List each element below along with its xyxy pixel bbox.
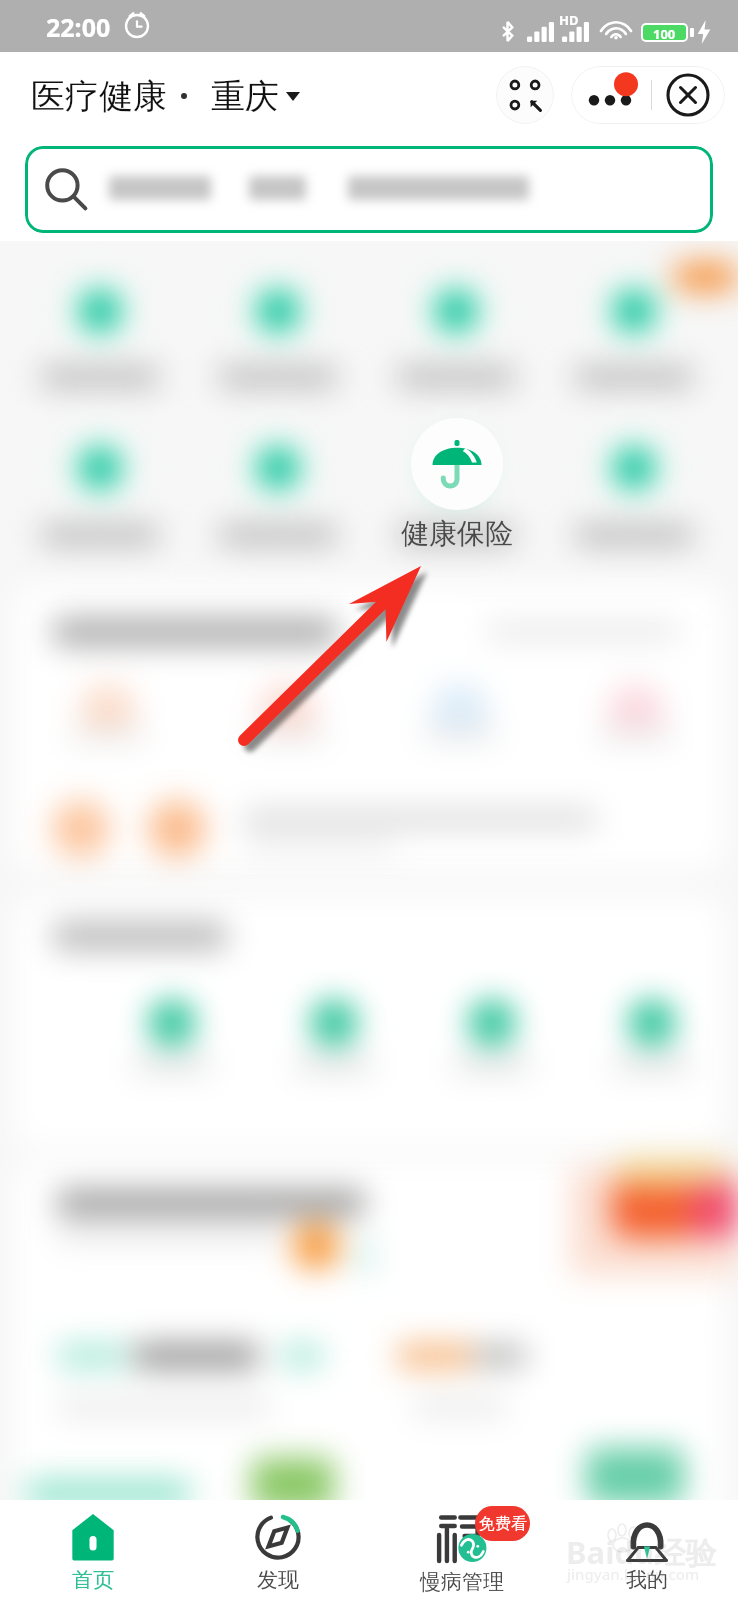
staticText: 100 bbox=[653, 25, 676, 40]
staticText: Baidu经验 bbox=[566, 1531, 717, 1573]
button[interactable]: 更多 bbox=[571, 66, 651, 124]
staticText: 医疗健康 bbox=[31, 75, 167, 118]
staticText: 22:00 bbox=[46, 10, 111, 44]
staticText: 重庆 bbox=[211, 75, 279, 118]
staticText: 免费看 bbox=[479, 1514, 527, 1534]
button[interactable]: 发现 bbox=[185, 1500, 370, 1600]
staticText: 我的 bbox=[626, 1567, 668, 1593]
button[interactable]: 搜索 bbox=[25, 146, 713, 233]
staticText: 健康保险 bbox=[377, 516, 537, 551]
button[interactable]: 健康保险 bbox=[377, 418, 537, 563]
staticText: 慢病管理 bbox=[420, 1569, 504, 1595]
button[interactable]: 慢病管理 bbox=[369, 1500, 554, 1600]
staticText: 首页 bbox=[72, 1567, 114, 1593]
button[interactable]: 扫一扫 bbox=[496, 66, 554, 124]
button[interactable]: 关闭 bbox=[651, 66, 725, 124]
staticText: jingyan.baidu.com bbox=[567, 1564, 700, 1584]
button[interactable]: 医疗健康 bbox=[31, 52, 300, 140]
button[interactable]: 首页 bbox=[0, 1500, 185, 1600]
staticText: HD bbox=[559, 11, 579, 29]
button[interactable]: 我的 bbox=[554, 1500, 738, 1600]
staticText: 发现 bbox=[257, 1567, 299, 1593]
